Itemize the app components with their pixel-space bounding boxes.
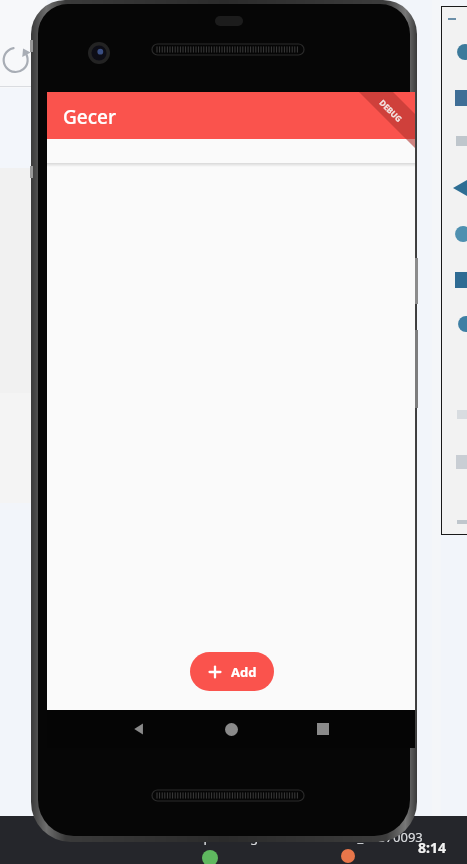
staticText: Gecer <box>63 104 116 130</box>
button[interactable]: Add <box>190 652 274 691</box>
button[interactable]: Rotate <box>0 40 34 80</box>
button[interactable]: Home <box>201 710 261 748</box>
button[interactable]: Recent apps <box>293 710 353 748</box>
staticText: Add <box>231 663 257 681</box>
staticText: DEBUG <box>377 97 405 124</box>
button[interactable]: Back <box>109 710 169 748</box>
staticText: https://blog.csdn.net/weixin_39370093 <box>186 828 423 846</box>
staticText: 8:14 <box>418 838 446 857</box>
staticText: 12:14 <box>59 97 90 113</box>
